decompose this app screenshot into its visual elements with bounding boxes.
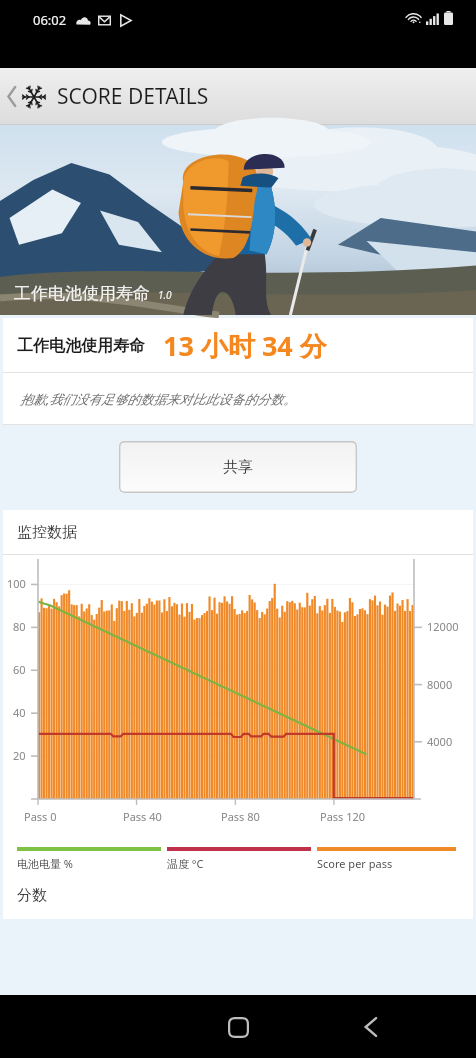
button[interactable]: Back <box>347 1003 395 1051</box>
staticText: Pass 80 <box>221 809 260 824</box>
staticText: 13 小时 34 分 <box>163 327 327 364</box>
staticText: SCORE DETAILS <box>57 82 209 111</box>
staticText: 60 <box>13 662 26 677</box>
staticText: 工作电池使用寿命 <box>14 283 150 304</box>
staticText: 4000 <box>427 734 453 749</box>
staticText: Pass 120 <box>320 809 366 824</box>
staticText: 20 <box>13 748 26 763</box>
staticText: 监控数据 <box>17 523 77 542</box>
staticText: 8000 <box>427 677 453 692</box>
staticText: 分数 <box>17 886 47 905</box>
staticText: Score per pass <box>317 856 393 871</box>
button[interactable]: Home <box>214 1003 262 1051</box>
staticText: 1.0 <box>158 288 172 302</box>
staticText: 抱歉,我们没有足够的数据来对比此设备的分数。 <box>20 390 297 408</box>
staticText: Pass 0 <box>24 809 57 824</box>
staticText: 100 <box>7 576 26 591</box>
button[interactable]: 共享 <box>119 441 357 493</box>
staticText: 12000 <box>427 619 459 634</box>
staticText: 06:02 <box>33 11 67 29</box>
staticText: 电池电量 % <box>17 856 74 871</box>
button[interactable]: Back <box>0 68 221 125</box>
staticText: 温度 °C <box>167 856 204 871</box>
staticText: Pass 40 <box>123 809 162 824</box>
staticText: 40 <box>13 705 26 720</box>
staticText: 共享 <box>223 458 253 477</box>
staticText: 工作电池使用寿命 <box>17 336 145 356</box>
staticText: 80 <box>13 619 26 634</box>
